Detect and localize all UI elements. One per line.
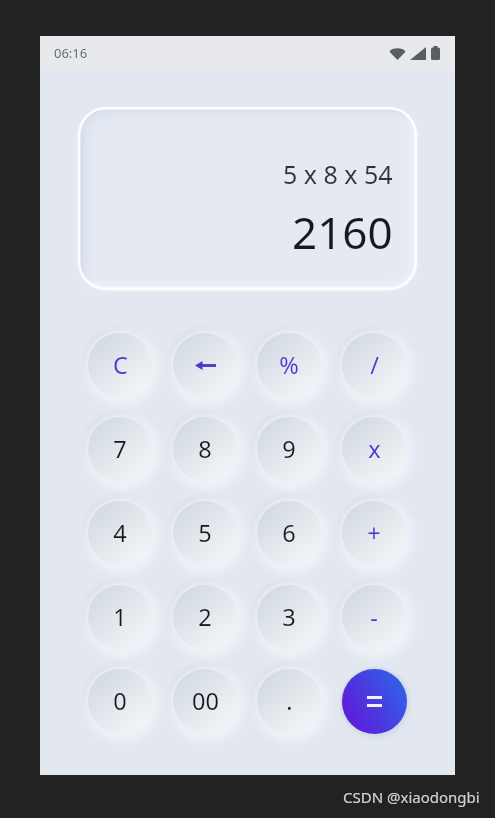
staticText: x [368,433,381,465]
staticText: 2 [198,601,212,633]
button[interactable]: 00 [173,669,237,733]
staticText: 5 x 8 x 54 [283,157,393,191]
staticText: 00 [192,685,219,717]
staticText: 06:16 [54,44,88,62]
button[interactable]: 5 [173,501,237,565]
staticText: 5 [198,517,212,549]
button[interactable]: 3 [257,585,321,649]
staticText: 4 [113,517,127,549]
button[interactable]: - [342,585,406,649]
button[interactable]: 1 [88,585,152,649]
staticText: 7 [113,433,127,465]
button[interactable]: 2 [173,585,237,649]
button[interactable]: % [257,333,321,397]
staticText: 2160 [292,202,393,262]
staticText: + [367,517,381,549]
staticText: - [370,601,378,633]
button[interactable]: 4 [88,501,152,565]
staticText: . [286,685,293,717]
button[interactable]: 6 [257,501,321,565]
button[interactable]: 0 [88,669,152,733]
button[interactable]: x [342,417,406,481]
staticText: C [113,349,128,381]
staticText: % [279,349,299,381]
staticText: 8 [198,433,212,465]
button[interactable]: C [88,333,152,397]
staticText: 0 [113,685,127,717]
button[interactable]: . [257,669,321,733]
button[interactable]: 9 [257,417,321,481]
staticText: 9 [282,433,296,465]
button[interactable]: Backspace [173,333,237,397]
staticText: 1 [113,601,127,633]
button[interactable]: / [342,333,406,397]
staticText: CSDN @xiaodongbi [343,787,480,807]
staticText: 3 [282,601,296,633]
button[interactable]: 8 [173,417,237,481]
staticText: / [370,349,379,381]
staticText: 6 [282,517,296,549]
button[interactable]: 7 [88,417,152,481]
button[interactable]: + [342,501,406,565]
button[interactable]: Equals [342,669,407,734]
